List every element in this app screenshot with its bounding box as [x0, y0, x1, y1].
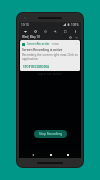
button[interactable]: Do not disturb — [52, 28, 58, 34]
staticText: 100% — [71, 23, 79, 27]
staticText: STOP RECORDING — [23, 65, 50, 69]
button[interactable]: Settings — [42, 28, 48, 34]
staticText: 10:10 — [21, 23, 29, 27]
staticText: application. — [22, 57, 39, 61]
button[interactable]: ScreenRecorder — [20, 40, 80, 71]
button[interactable]: Bluetooth — [32, 28, 38, 34]
button[interactable]: STOP RECORDING — [22, 65, 51, 69]
button[interactable]: tap to see earlier — [19, 71, 81, 77]
button[interactable]: Expand — [74, 35, 78, 39]
button[interactable]: Flashlight — [72, 28, 78, 34]
button[interactable]: Wi-Fi — [22, 28, 28, 34]
staticText: Stop Recording — [39, 132, 63, 136]
button[interactable]: Battery saver — [62, 28, 68, 34]
button[interactable]: Recent apps — [64, 151, 71, 158]
button[interactable]: Settings — [68, 35, 72, 39]
staticText: · now — [51, 42, 59, 46]
staticText: ScreenRecorder — [27, 42, 50, 46]
staticText: tap to see earlier — [38, 72, 62, 76]
button[interactable]: Home — [47, 151, 54, 158]
staticText: Screen Recording is active — [22, 48, 63, 52]
staticText: Wed, May 10 — [22, 35, 40, 39]
button[interactable]: Stop Recording — [34, 130, 67, 138]
button[interactable]: Back — [29, 151, 36, 158]
staticText: Recording the screen right now. Click to… — [22, 53, 78, 57]
